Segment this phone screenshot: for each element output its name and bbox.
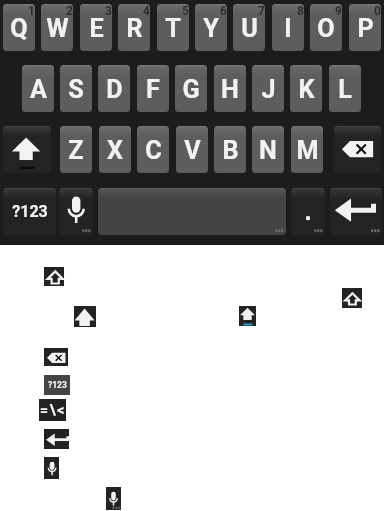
button[interactable]: Shift off [342, 288, 362, 308]
staticText: M [296, 136, 319, 166]
staticText: X [107, 136, 123, 166]
staticText: E [89, 14, 104, 44]
staticText: Z [68, 136, 84, 166]
staticText: I [284, 14, 292, 44]
button[interactable]: =\< [39, 399, 66, 421]
button[interactable]: G [175, 65, 207, 112]
button[interactable]: D [98, 65, 130, 112]
button[interactable]: N [252, 126, 284, 173]
button[interactable]: R [118, 4, 150, 51]
button[interactable]: Enter [330, 188, 382, 235]
button[interactable]: K [290, 65, 322, 112]
staticText: A [30, 75, 47, 105]
staticText: ?123 [48, 380, 67, 390]
staticText: J [261, 75, 276, 105]
staticText: 1 [28, 4, 35, 18]
button[interactable]: Enter [44, 429, 69, 449]
staticText: Q [10, 14, 28, 44]
button[interactable]: V [176, 126, 208, 173]
staticText: 5 [182, 4, 189, 18]
button[interactable]: L [329, 65, 361, 112]
staticText: L [338, 75, 352, 105]
button[interactable]: H [214, 65, 246, 112]
staticText: G [182, 75, 200, 105]
button[interactable]: Y [195, 4, 227, 51]
button[interactable]: W [41, 4, 73, 51]
staticText: N [259, 136, 277, 166]
staticText: Y [203, 14, 219, 44]
button[interactable]: Voice input [59, 188, 93, 235]
button[interactable]: C [137, 126, 169, 173]
button[interactable]: T [157, 4, 189, 51]
button[interactable]: Shift on [74, 306, 96, 327]
button[interactable]: A [22, 65, 54, 112]
staticText: =\< [40, 402, 66, 418]
button[interactable]: J [252, 65, 284, 112]
staticText: B [222, 136, 239, 166]
staticText: K [298, 75, 315, 105]
button[interactable]: I [272, 4, 304, 51]
staticText: 6 [220, 4, 227, 18]
button[interactable]: ?123 [44, 375, 70, 395]
staticText: R [126, 14, 143, 44]
staticText: 9 [335, 4, 342, 18]
button[interactable]: X [99, 126, 131, 173]
staticText: S [68, 75, 84, 105]
button[interactable]: Backspace [334, 126, 381, 173]
button[interactable]: O [310, 4, 342, 51]
staticText: 7 [258, 4, 265, 18]
staticText: V [184, 136, 201, 166]
staticText: 3 [105, 4, 112, 18]
staticText: H [221, 75, 239, 105]
staticText: 4 [143, 4, 150, 18]
staticText: 8 [297, 4, 304, 18]
staticText: F [146, 75, 160, 105]
button[interactable]: Period [291, 188, 325, 235]
button[interactable]: Q [3, 4, 35, 51]
button[interactable]: Shift [3, 126, 51, 173]
staticText: U [241, 14, 258, 44]
staticText: O [317, 14, 335, 44]
button[interactable]: Caps lock [239, 306, 256, 326]
button[interactable]: Shift off [44, 267, 64, 286]
staticText: ?123 [12, 202, 48, 221]
button[interactable]: Voice input [44, 457, 59, 479]
button[interactable]: F [137, 65, 169, 112]
button[interactable]: ?123 [3, 188, 56, 235]
button[interactable]: Voice input [106, 487, 121, 510]
button[interactable]: M [291, 126, 323, 173]
staticText: T [165, 14, 181, 44]
staticText: 2 [66, 4, 73, 18]
button[interactable]: Z [60, 126, 92, 173]
button[interactable]: P [349, 4, 381, 51]
button[interactable]: B [214, 126, 246, 173]
staticText: D [106, 75, 123, 105]
staticText: P [357, 14, 374, 44]
button[interactable]: U [233, 4, 265, 51]
staticText: W [46, 14, 69, 44]
button[interactable]: S [60, 65, 92, 112]
staticText: C [145, 136, 162, 166]
button[interactable]: E [80, 4, 112, 51]
staticText: 0 [374, 4, 381, 18]
button[interactable]: Space [98, 188, 286, 235]
button[interactable]: Backspace [44, 348, 68, 366]
